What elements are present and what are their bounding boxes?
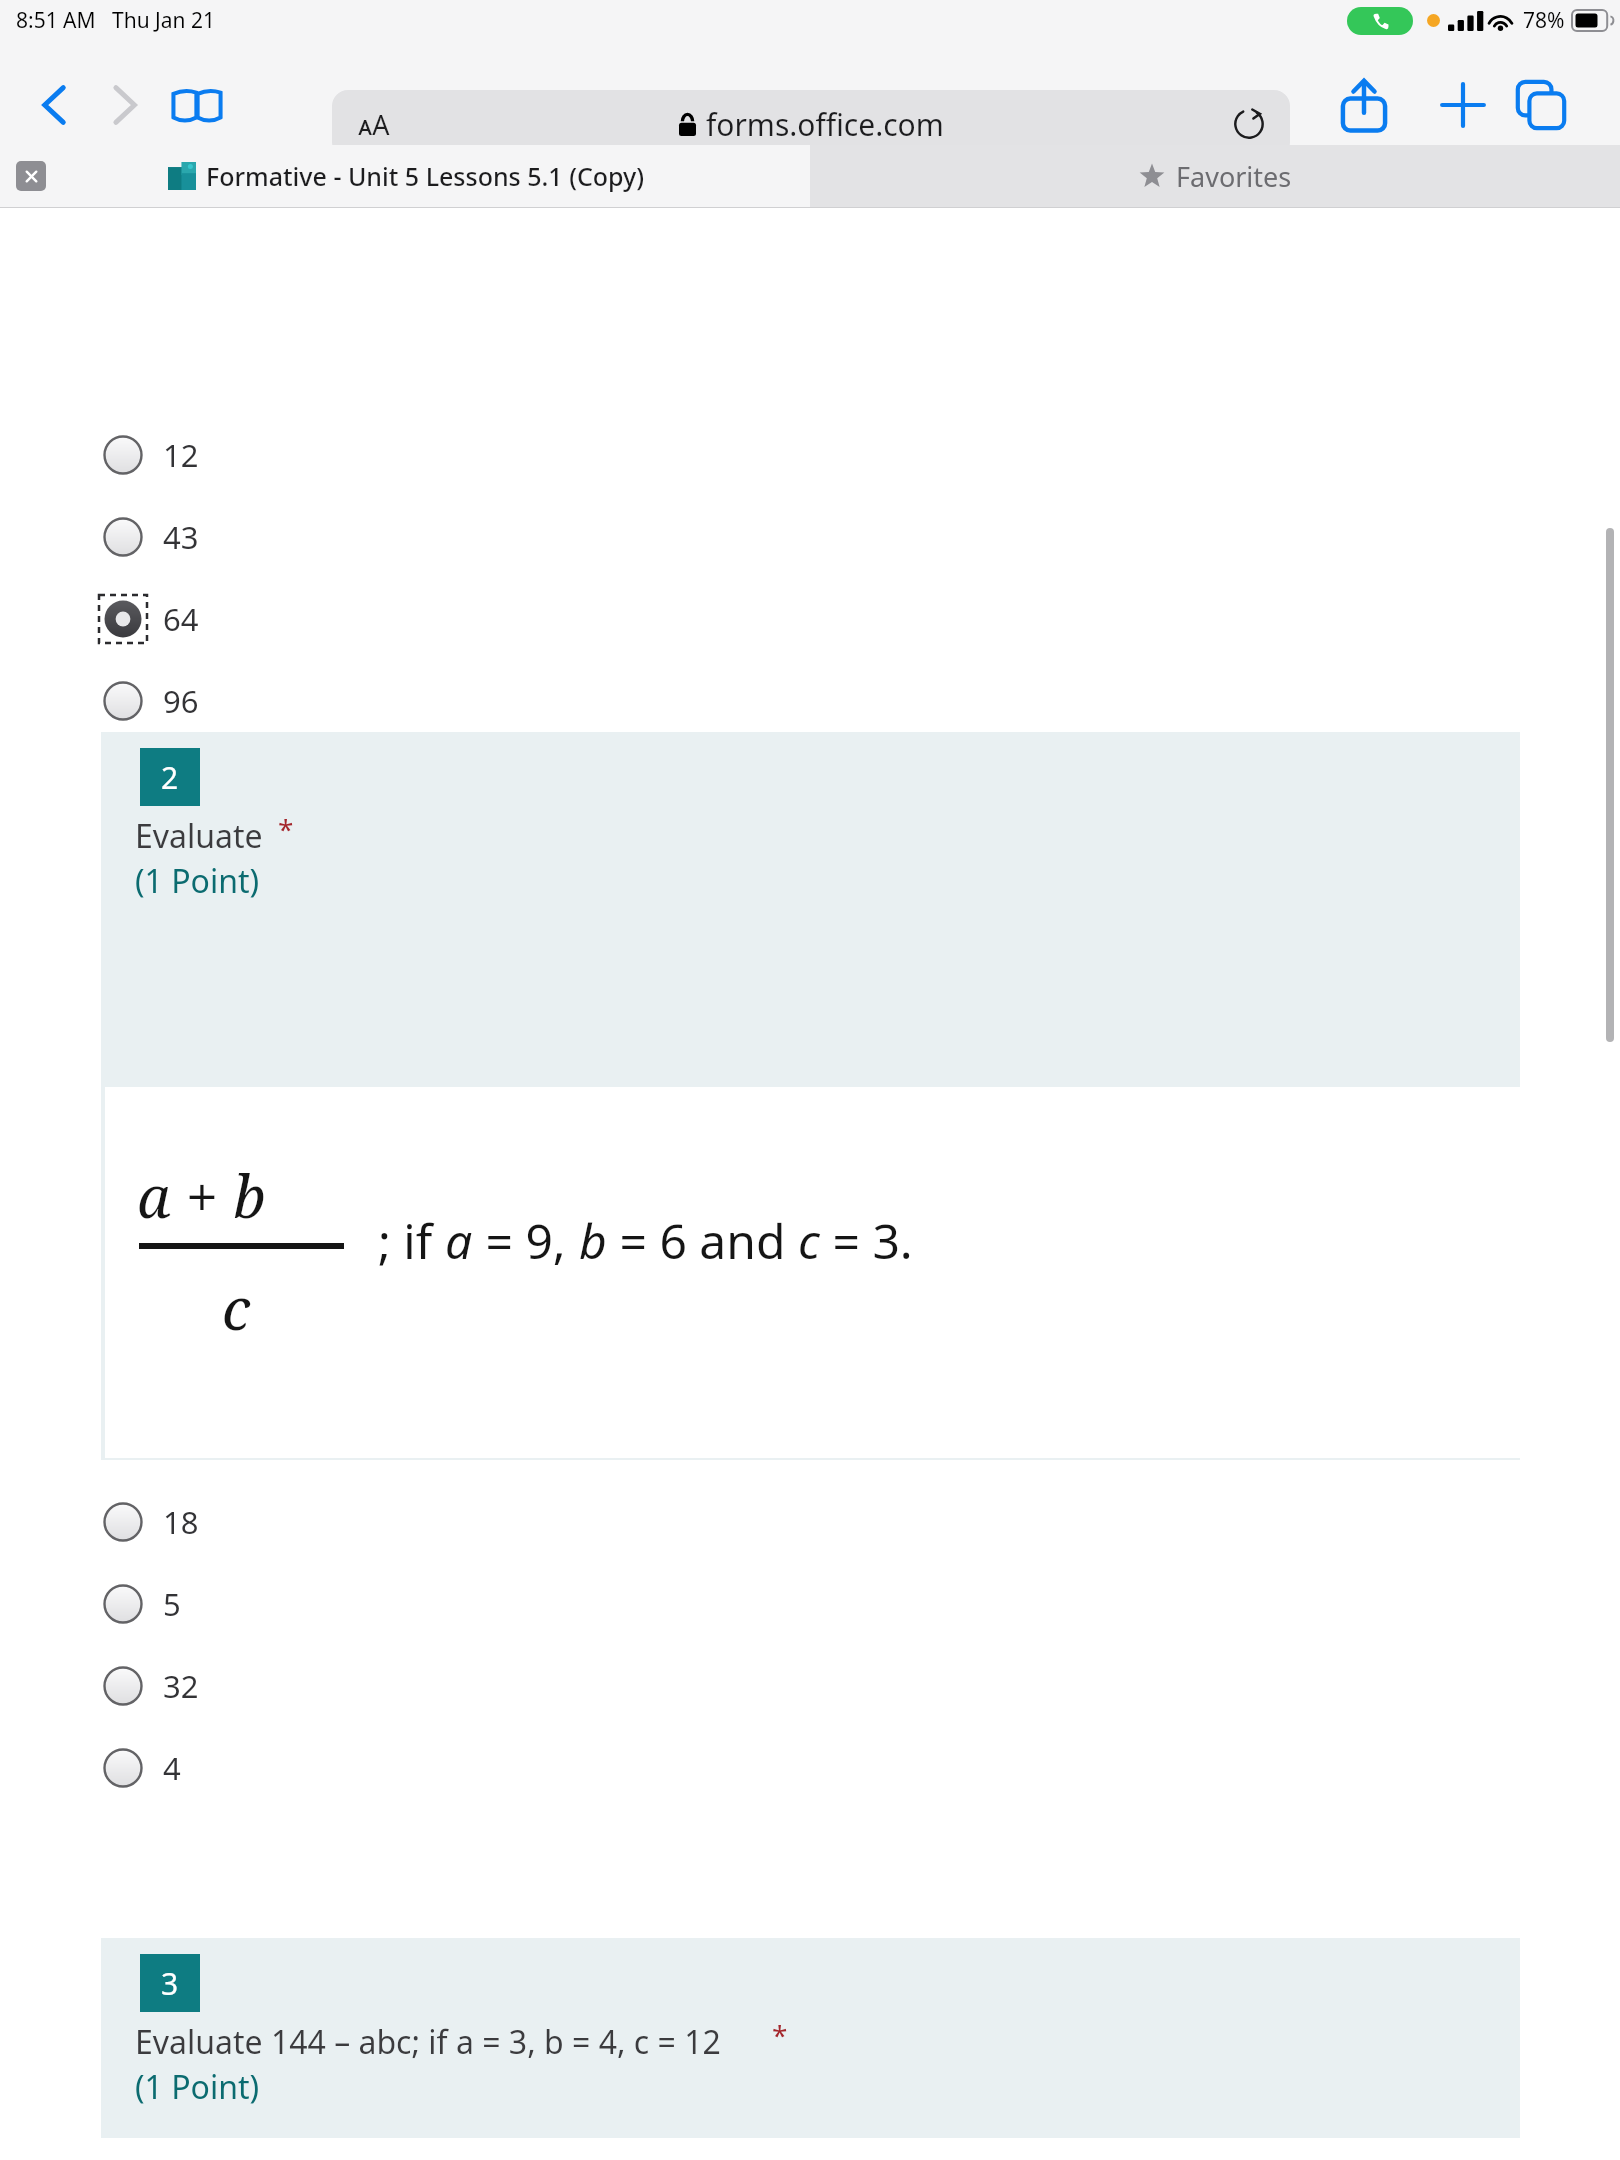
staticText: 32	[163, 1665, 199, 1707]
staticText: Thu Jan 21	[112, 6, 216, 35]
button[interactable]: Favorites	[810, 145, 1620, 207]
staticText: Evaluate 144 – abc; if a = 3, b = 4, c =…	[135, 2020, 721, 2064]
staticText: *	[772, 2016, 788, 2054]
staticText: 4	[163, 1747, 181, 1789]
button[interactable]: New tab	[1434, 76, 1492, 134]
staticText: Formative - Unit 5 Lessons 5.1 (Copy)	[206, 159, 645, 193]
staticText: 18	[163, 1501, 199, 1543]
staticText: a + b	[137, 1156, 266, 1235]
button[interactable]: Share	[1333, 73, 1395, 137]
button[interactable]: 4	[90, 1732, 1530, 1804]
button[interactable]: ᴀA	[332, 90, 1290, 158]
staticText: c	[222, 1268, 251, 1347]
staticText: c	[798, 1208, 820, 1273]
staticText: ᴀA	[358, 106, 390, 143]
button[interactable]: 64	[90, 583, 1530, 655]
button[interactable]: Back	[25, 76, 83, 134]
staticText: 96	[163, 680, 199, 722]
button[interactable]: Close tab	[16, 161, 46, 191]
other: Active call	[1347, 7, 1413, 35]
button[interactable]: 32	[90, 1650, 1530, 1722]
staticText: *	[278, 810, 294, 848]
staticText: forms.office.com	[706, 104, 944, 145]
staticText: (1 Point)	[135, 859, 260, 903]
button[interactable]: Reload	[1230, 105, 1268, 143]
staticText: 78%	[1523, 6, 1565, 35]
button[interactable]: Bookmarks	[166, 74, 228, 136]
button[interactable]: 5	[90, 1568, 1530, 1640]
staticText: 2	[161, 757, 179, 798]
button[interactable]: 12	[90, 419, 1530, 491]
staticText: Evaluate	[135, 814, 263, 858]
button[interactable]: Forward	[95, 76, 153, 134]
staticText: (1 Point)	[135, 2065, 260, 2109]
button[interactable]: Show all tabs	[1512, 76, 1570, 134]
button[interactable]: Close tab	[0, 145, 810, 207]
button[interactable]: 96	[90, 665, 1530, 737]
staticText: 8:51 AM	[16, 6, 96, 35]
staticText: ; if	[378, 1208, 445, 1273]
staticText: 12	[163, 434, 199, 476]
staticText: = 3.	[820, 1208, 913, 1273]
button[interactable]: 43	[90, 501, 1530, 573]
staticText: b	[579, 1208, 607, 1273]
staticText: 43	[163, 516, 199, 558]
staticText: a	[445, 1208, 473, 1273]
staticText: = 9,	[473, 1208, 579, 1273]
staticText: 64	[163, 598, 199, 640]
button[interactable]: 18	[90, 1486, 1530, 1558]
staticText: Favorites	[1176, 158, 1292, 195]
staticText: = 6 and	[607, 1208, 798, 1273]
staticText: 5	[163, 1583, 181, 1625]
staticText: 3	[161, 1963, 179, 2004]
